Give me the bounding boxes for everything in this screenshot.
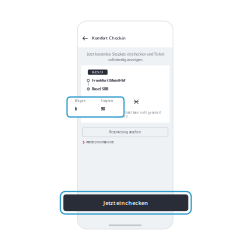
staticText: 6 <box>75 106 77 112</box>
staticText: Sitzplatz <box>101 99 113 103</box>
staticText: Komfort Check-in <box>92 35 126 41</box>
button[interactable]: Weitere Informationen <box>82 140 114 144</box>
staticText: Weitere Informationen <box>86 141 114 144</box>
staticText: Basel SBB <box>92 86 108 91</box>
button[interactable]: Jetzt einchecken <box>60 191 191 214</box>
button[interactable]: Reservierung ansehen <box>82 128 168 137</box>
staticText: Dein Ticket kann nicht geändert werden <box>117 111 161 118</box>
button[interactable]: Zurück <box>82 35 88 41</box>
staticText: Jetzt kostenlos Sitzplatz einchecken und… <box>87 51 164 62</box>
staticText: ICE 573 <box>92 70 103 74</box>
staticText: 90 <box>101 106 105 112</box>
staticText: Jetzt einchecken <box>103 199 148 206</box>
staticText: Wagen <box>75 99 86 103</box>
staticText: Reservierung ansehen <box>109 130 141 134</box>
staticText: Frankfurt(Main)Hbf <box>92 78 125 83</box>
